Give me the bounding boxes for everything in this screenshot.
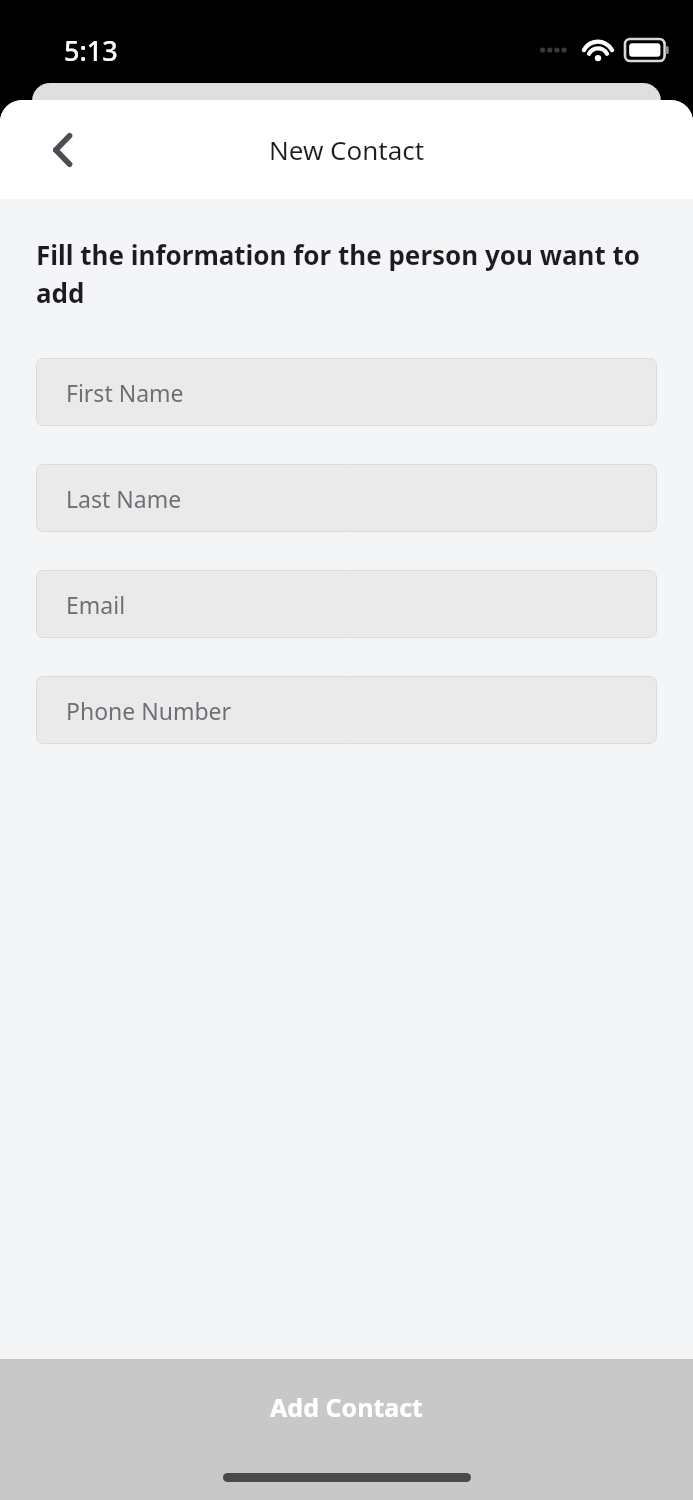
button[interactable]: First Name — [36, 358, 657, 426]
button[interactable]: Phone Number — [36, 676, 657, 744]
staticText: New Contact — [269, 132, 425, 167]
staticText: First Name — [66, 377, 184, 408]
button[interactable]: Add Contact — [0, 1359, 693, 1500]
button[interactable]: Last Name — [36, 464, 657, 532]
staticText: Phone Number — [66, 695, 232, 726]
staticText: Last Name — [66, 483, 182, 514]
staticText: 5:13 — [64, 32, 118, 69]
staticText: Email — [66, 589, 126, 620]
button[interactable]: Email — [36, 570, 657, 638]
button[interactable]: Back — [32, 119, 94, 181]
staticText: Add Contact — [0, 1390, 693, 1424]
staticText: Fill the information for the person you … — [36, 237, 657, 310]
